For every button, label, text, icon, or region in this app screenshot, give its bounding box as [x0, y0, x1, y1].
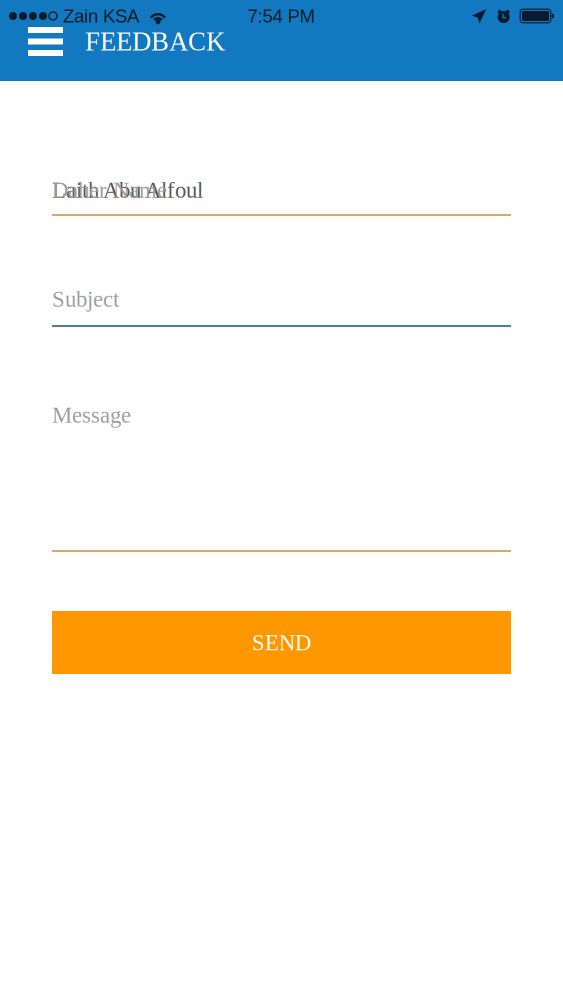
button[interactable]: Menu: [0, 16, 85, 67]
button[interactable]: SEND: [52, 611, 511, 674]
staticText: SEND: [252, 630, 311, 655]
staticText: Subject: [52, 286, 119, 311]
button[interactable]: Message: [52, 401, 511, 552]
button[interactable]: Laith Abu Alfoul: [52, 176, 511, 216]
staticText: FEEDBACK: [85, 27, 225, 56]
staticText: 7:54 PM: [247, 6, 315, 26]
staticText: Zain KSA: [63, 6, 139, 26]
staticText: Laith Abu Alfoul: [52, 177, 203, 202]
staticText: Message: [52, 402, 131, 427]
button[interactable]: Subject: [52, 285, 511, 327]
staticText: Daher Name: [52, 177, 167, 202]
